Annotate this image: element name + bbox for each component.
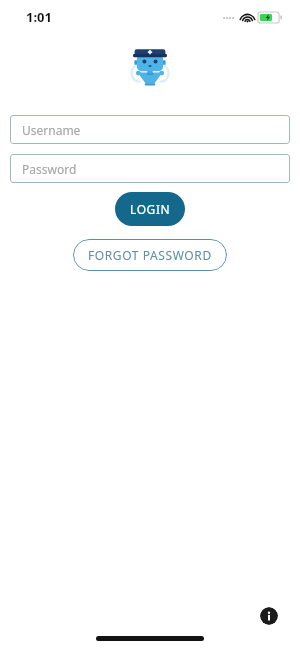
staticText: FORGOT PASSWORD (88, 247, 212, 263)
button[interactable]: FORGOT PASSWORD (73, 239, 227, 271)
staticText: LOGIN (130, 201, 171, 217)
button[interactable]: LOGIN (115, 192, 185, 226)
staticText: Password (22, 161, 77, 177)
button[interactable]: Information (260, 607, 278, 625)
button[interactable]: Password (10, 154, 290, 183)
staticText: 1:01 (26, 8, 52, 26)
button[interactable]: Username (10, 115, 290, 144)
staticText: Username (22, 122, 81, 138)
